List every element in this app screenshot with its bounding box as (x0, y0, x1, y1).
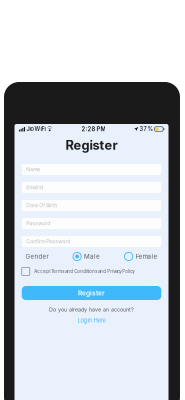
staticText: Register (65, 137, 117, 153)
button[interactable]: Female (124, 252, 157, 261)
button[interactable]: Accept Terms and Conditions and Privacy … (22, 267, 161, 276)
button[interactable]: Login Here (77, 317, 105, 324)
staticText: Password (26, 220, 50, 226)
staticText: Do you already have an account? (49, 306, 134, 313)
button[interactable]: Male (73, 252, 100, 261)
staticText: Date Of Birth (26, 202, 57, 208)
staticText: Name (26, 166, 40, 172)
staticText: 2:28 PM (81, 125, 105, 133)
staticText: Accept Terms and Conditions and Privacy … (34, 269, 134, 274)
staticText: 37 % (138, 126, 154, 132)
button[interactable]: Register (22, 286, 161, 300)
staticText: Gender (25, 253, 48, 260)
staticText: Confirm Password (26, 238, 70, 244)
staticText: Login Here (77, 317, 105, 324)
staticText: Female (135, 253, 157, 260)
staticText: Register (78, 289, 105, 297)
staticText: Email Id (26, 184, 43, 190)
staticText: Male (84, 253, 100, 260)
staticText: Jio WiFi (25, 126, 46, 132)
